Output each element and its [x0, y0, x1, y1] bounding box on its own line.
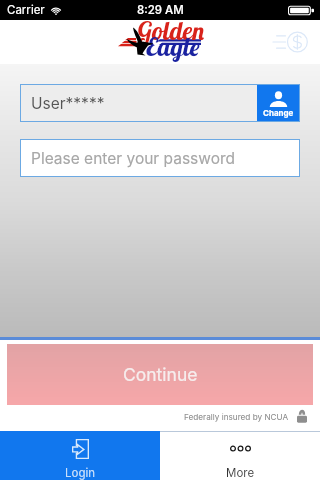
button[interactable]: Quick balance — [272, 25, 312, 59]
staticText: Change — [263, 108, 294, 118]
button[interactable]: Continue — [7, 344, 313, 405]
staticText: Please enter your password — [31, 149, 236, 168]
staticText: Eagle — [146, 31, 200, 62]
button[interactable]: User***** — [20, 84, 300, 122]
staticText: User***** — [31, 94, 105, 113]
staticText: Login — [65, 466, 96, 480]
button[interactable]: Change user — [257, 85, 299, 121]
staticText: Continue — [123, 364, 198, 385]
staticText: Golden — [137, 15, 206, 46]
staticText: Federally insured by NCUA — [184, 412, 289, 422]
button[interactable]: Please enter your password — [20, 139, 300, 177]
staticText: More — [226, 466, 255, 480]
staticText: 8:29 AM — [137, 3, 184, 17]
button[interactable]: More — [160, 431, 320, 480]
staticText: Carrier — [7, 3, 45, 17]
button[interactable]: Login — [0, 431, 160, 480]
